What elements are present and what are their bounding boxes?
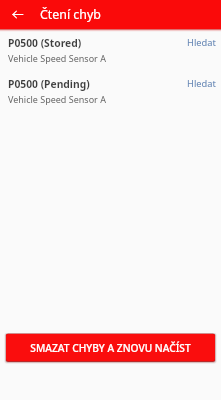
staticText: Čtení chyb [40,6,101,23]
button[interactable]: P0500 (Stored) [0,36,221,66]
staticText: Vehicle Speed Sensor A [8,52,106,64]
button[interactable]: Hledat [187,36,221,49]
button[interactable]: P0500 (Pending) [0,77,221,107]
staticText: Hledat [187,36,216,49]
staticText: P0500 (Pending) [8,77,90,91]
staticText: P0500 (Stored) [8,36,82,50]
staticText: Hledat [187,77,216,90]
staticText: SMAZAT CHYBY A ZNOVU NAČÍST [30,341,191,355]
button[interactable]: Back [7,4,29,26]
staticText: Vehicle Speed Sensor A [8,93,106,105]
button[interactable]: Hledat [187,77,221,90]
button[interactable]: SMAZAT CHYBY A ZNOVU NAČÍST [6,334,215,361]
